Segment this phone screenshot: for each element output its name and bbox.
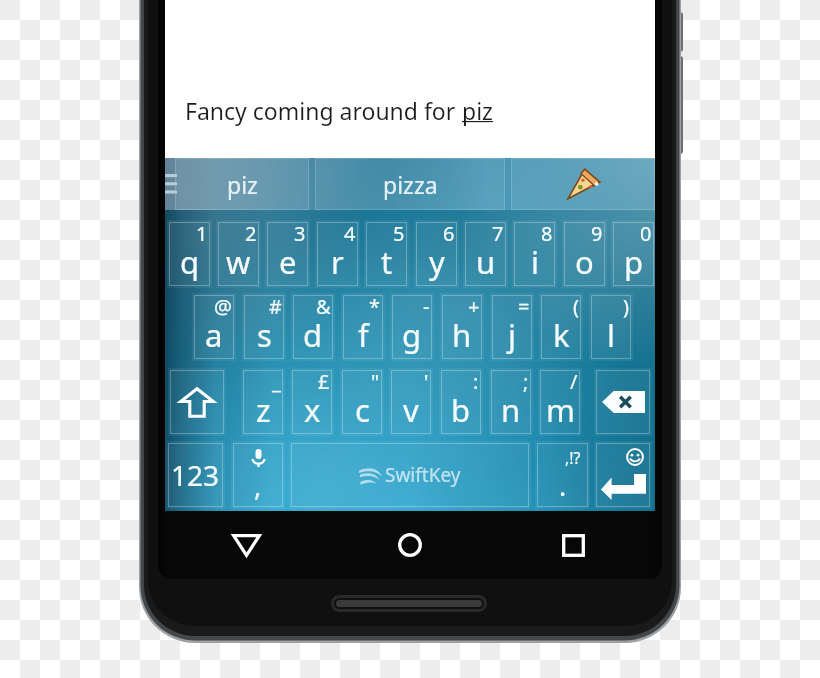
staticText: f [358, 314, 369, 356]
staticText: k [553, 314, 570, 356]
button[interactable]: & [293, 295, 333, 359]
staticText: 123 [171, 456, 220, 494]
staticText: n [501, 389, 521, 431]
button[interactable]: Enter [596, 443, 650, 507]
button[interactable]: 5 [366, 222, 407, 286]
button[interactable]: # [244, 295, 284, 359]
staticText: _ [272, 368, 281, 395]
staticText: 7 [492, 220, 504, 247]
button[interactable]: 1 [169, 222, 210, 286]
staticText: i [531, 241, 539, 283]
button[interactable]: 0 [613, 222, 654, 286]
staticText: v [403, 389, 419, 431]
staticText: pizza [383, 169, 438, 200]
button[interactable]: / [540, 370, 580, 434]
button[interactable]: Shift [170, 370, 224, 434]
button[interactable]: ) [591, 295, 631, 359]
button[interactable]: 8 [514, 222, 555, 286]
button[interactable]: - [392, 295, 432, 359]
button[interactable]: 9 [564, 222, 605, 286]
button[interactable]: pizza [315, 158, 505, 210]
staticText: 6 [443, 220, 455, 247]
button[interactable]: + [442, 295, 482, 359]
button[interactable]: 3 [267, 222, 308, 286]
staticText: # [269, 293, 282, 320]
staticText: t [381, 241, 393, 283]
staticText: = [518, 293, 530, 320]
button[interactable]: piz [175, 158, 309, 210]
staticText: r [331, 241, 344, 283]
button[interactable]: Pizza emoji [511, 158, 655, 210]
staticText: . [559, 467, 567, 504]
staticText: / [570, 368, 578, 395]
staticText: " [371, 368, 380, 395]
staticText: * [369, 293, 381, 320]
staticText: ) [623, 293, 629, 320]
button[interactable]: Space [291, 443, 529, 507]
staticText: ' [424, 368, 429, 395]
staticText: piz [462, 95, 493, 126]
staticText: , [254, 467, 262, 504]
staticText: q [180, 241, 200, 283]
staticText: Fancy coming around for [185, 95, 462, 126]
staticText: y [429, 241, 445, 283]
staticText: l [607, 314, 615, 356]
button[interactable]: : [441, 370, 481, 434]
staticText: 4 [344, 220, 356, 247]
staticText: z [256, 389, 271, 431]
staticText: w [226, 241, 251, 283]
button[interactable]: £ [292, 370, 332, 434]
staticText: 3 [294, 220, 306, 247]
button[interactable]: 2 [218, 222, 259, 286]
button[interactable]: " [342, 370, 382, 434]
staticText: h [452, 314, 472, 356]
staticText: j [508, 314, 516, 356]
staticText: 1 [196, 220, 208, 247]
button[interactable]: ( [541, 295, 581, 359]
staticText: ; [523, 368, 529, 395]
staticText: 5 [393, 220, 405, 247]
staticText: x [304, 389, 321, 431]
staticText: o [575, 241, 594, 283]
button[interactable]: 4 [317, 222, 358, 286]
staticText: d [303, 314, 323, 356]
staticText: 0 [640, 220, 652, 247]
button[interactable]: Back [165, 511, 328, 579]
staticText: £ [318, 368, 330, 395]
staticText: p [624, 241, 644, 283]
button[interactable]: Home [328, 511, 492, 579]
staticText: s [257, 314, 272, 356]
button[interactable]: _ [243, 370, 283, 434]
staticText: 8 [541, 220, 553, 247]
button[interactable]: Backspace [596, 370, 650, 434]
staticText: e [279, 241, 297, 283]
staticText: a [205, 314, 223, 356]
staticText: ( [573, 293, 579, 320]
button[interactable]: ,!? [537, 443, 588, 507]
button[interactable]: ' [391, 370, 431, 434]
staticText: u [476, 241, 496, 283]
staticText: & [316, 293, 331, 320]
button[interactable]: 7 [465, 222, 506, 286]
staticText: ,!? [565, 447, 581, 469]
button[interactable]: = [492, 295, 532, 359]
staticText: c [355, 389, 370, 431]
button[interactable]: 123 [168, 443, 223, 507]
staticText: 9 [591, 220, 603, 247]
button[interactable]: 6 [416, 222, 457, 286]
button[interactable]: * [343, 295, 383, 359]
staticText: g [402, 314, 422, 356]
button[interactable]: Voice input, comma [233, 443, 283, 507]
staticText: - [423, 293, 430, 320]
staticText: SwiftKey [385, 462, 461, 488]
button[interactable]: Keyboard menu [165, 158, 177, 210]
staticText: @ [214, 293, 232, 320]
staticText: + [468, 293, 480, 320]
button[interactable]: Recents [492, 511, 655, 579]
button[interactable]: ; [491, 370, 531, 434]
staticText: b [451, 389, 471, 431]
staticText: 2 [245, 220, 257, 247]
staticText: : [473, 368, 479, 395]
button[interactable]: @ [194, 295, 234, 359]
staticText: m [546, 389, 575, 431]
